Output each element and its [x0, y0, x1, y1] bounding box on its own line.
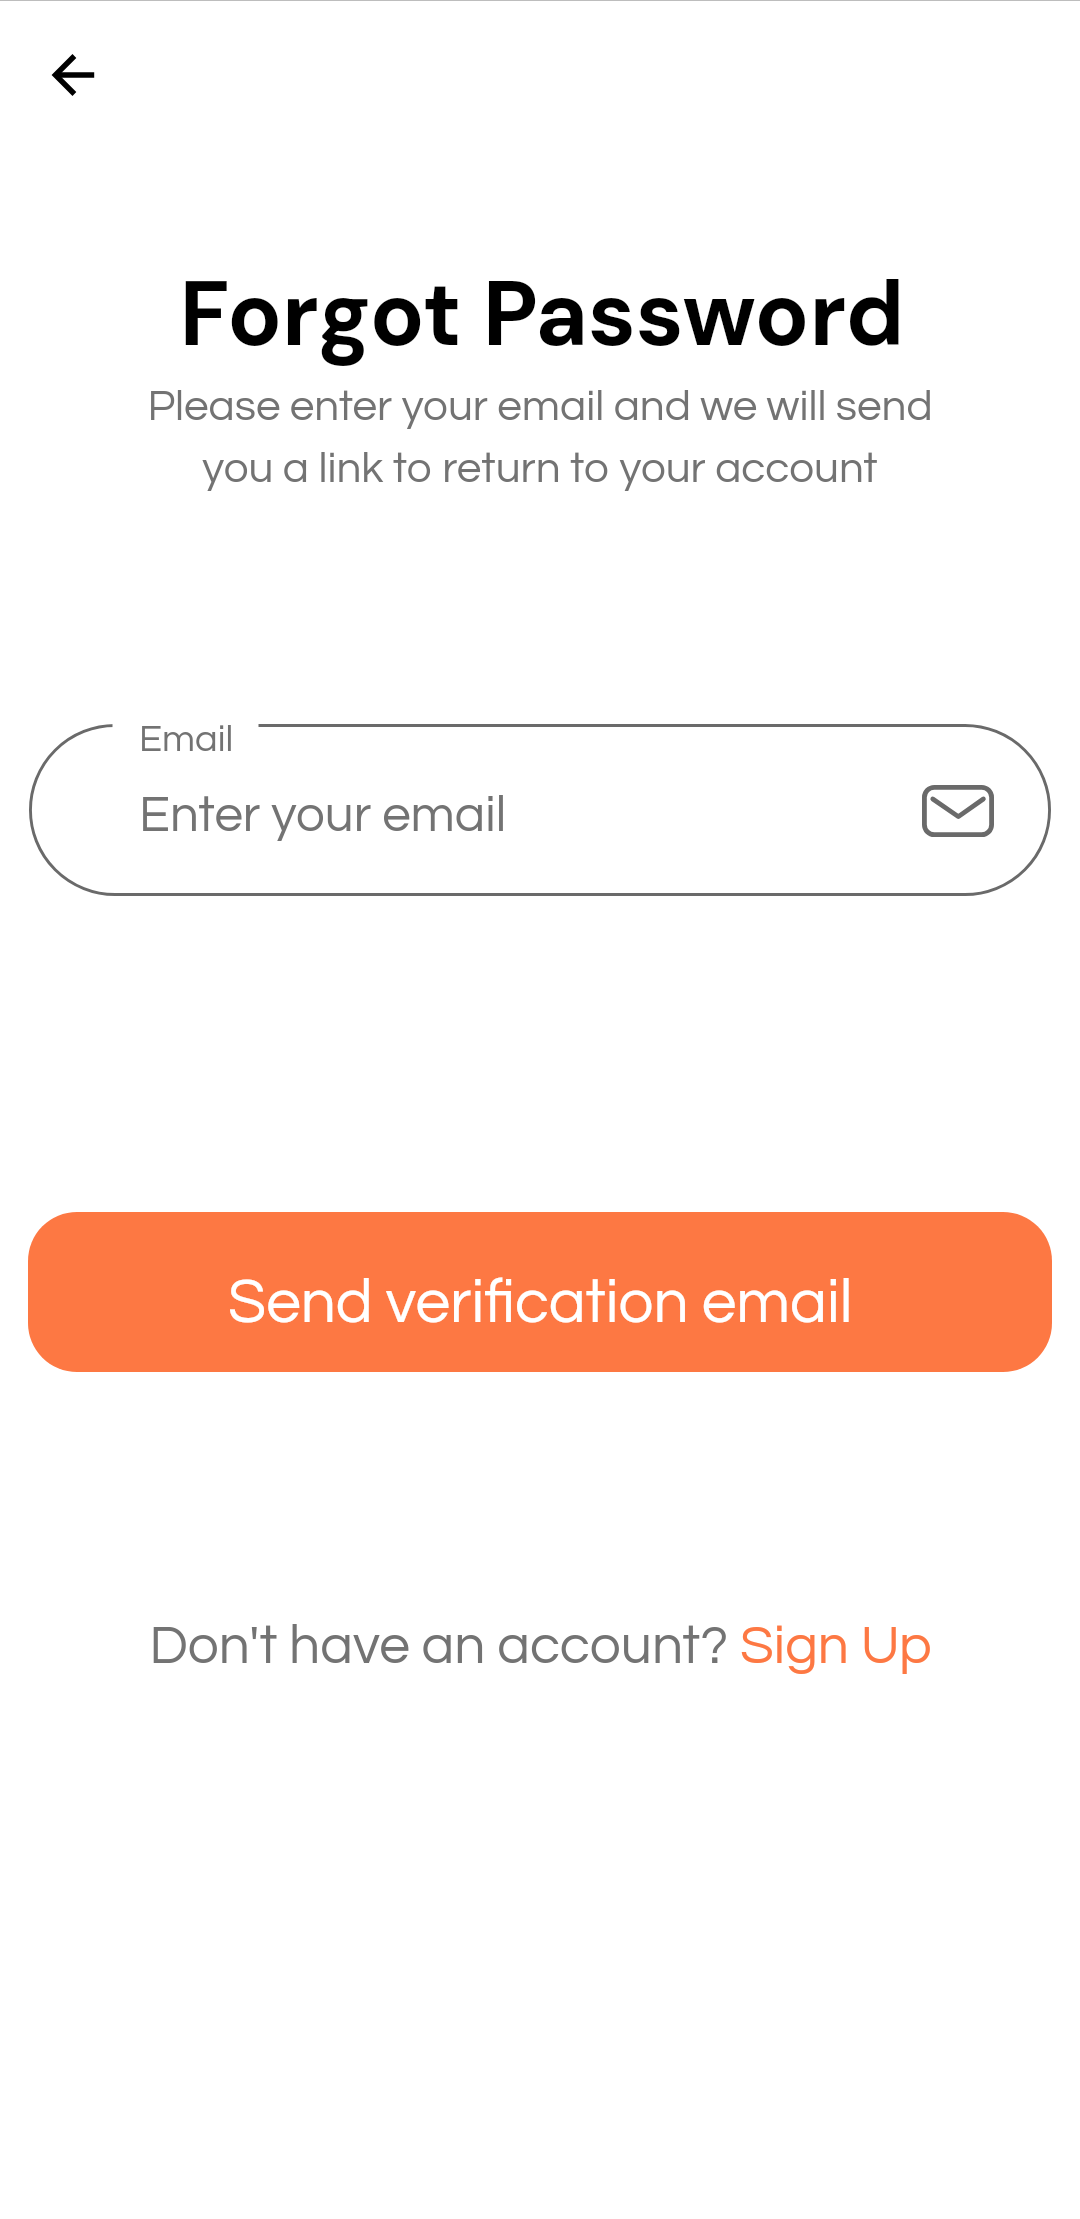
staticText: Forgot Password [2, 256, 1080, 373]
staticText: Email [139, 720, 234, 759]
button[interactable]: Back [28, 44, 104, 106]
staticText: Send verification email [228, 1271, 853, 1335]
other: Email [922, 785, 994, 837]
button[interactable]: Don't have an account? Sign Up [149, 1618, 932, 1675]
button[interactable]: Send verification email [28, 1212, 1052, 1372]
staticText: Please enter your email and we will send… [130, 384, 950, 491]
button[interactable]: Email [29, 724, 1051, 896]
staticText: Enter your email [139, 789, 507, 842]
staticText: Don't have an account? Sign Up [149, 1618, 932, 1675]
